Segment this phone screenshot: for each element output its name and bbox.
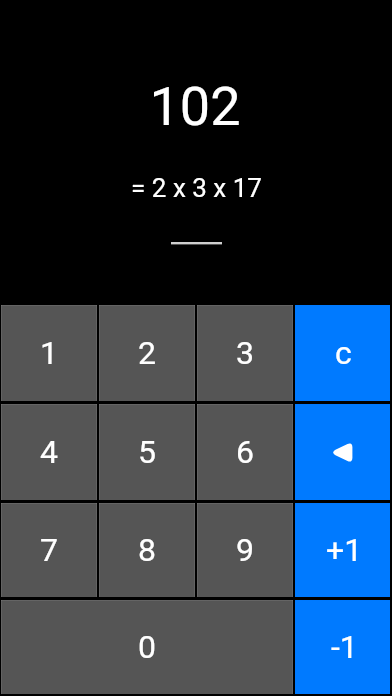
staticText: -1 (331, 628, 358, 666)
staticText: +1 (326, 531, 363, 569)
button[interactable]: c (295, 305, 390, 401)
staticText: 4 (40, 433, 58, 471)
staticText: c (335, 334, 352, 372)
button[interactable]: +1 (295, 503, 390, 597)
staticText: 2 (138, 334, 156, 372)
button[interactable]: 2 (99, 305, 195, 401)
staticText: 6 (236, 433, 254, 471)
staticText: 7 (40, 531, 58, 569)
button[interactable]: 1 (1, 305, 97, 401)
staticText: 8 (138, 531, 156, 569)
staticText: 102 (149, 75, 241, 138)
button[interactable]: -1 (295, 600, 390, 694)
staticText: 3 (236, 334, 254, 372)
staticText: = 2 x 3 x 17 (131, 173, 262, 203)
button[interactable]: 5 (99, 404, 195, 500)
button[interactable]: 8 (99, 503, 195, 597)
button[interactable]: Backspace (295, 404, 390, 500)
button[interactable]: 7 (1, 503, 97, 597)
button[interactable]: 3 (197, 305, 293, 401)
button[interactable]: 0 (1, 600, 293, 694)
staticText: 1 (40, 334, 58, 372)
button[interactable]: 4 (1, 404, 97, 500)
staticText: 0 (138, 628, 156, 666)
staticText: 5 (138, 433, 156, 471)
button[interactable]: 9 (197, 503, 293, 597)
button[interactable]: 6 (197, 404, 293, 500)
staticText: 9 (236, 531, 254, 569)
